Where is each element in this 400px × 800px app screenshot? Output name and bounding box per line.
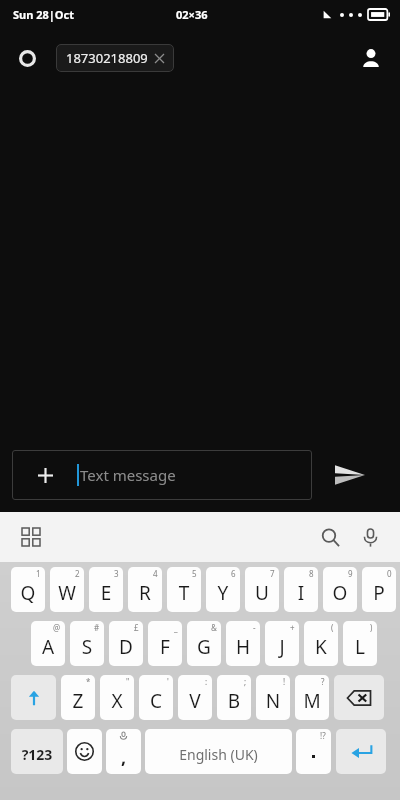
button[interactable]: 8 [284,567,318,612]
button[interactable]: ) [343,621,377,666]
button[interactable]: Search [314,521,346,553]
staticText: # [94,622,100,633]
button[interactable]: 1 [11,567,45,612]
staticText: V [178,688,212,714]
staticText: D [109,634,143,660]
staticText: I [284,580,318,606]
button[interactable]: Contacts [356,43,386,73]
staticText: Sun 28|Oct [13,7,75,22]
staticText: F [148,634,182,660]
button[interactable]: * [61,675,95,720]
button[interactable]: 4 [128,567,162,612]
button[interactable]: 18730218809 [56,44,174,72]
button[interactable]: Backspace [334,675,384,720]
staticText: ' [167,676,169,687]
staticText: W [50,580,84,606]
button[interactable]: @ [31,621,65,666]
staticText: 0 [387,568,392,579]
staticText: 18730218809 [66,49,148,67]
staticText: & [211,622,217,633]
staticText: 9 [348,568,353,579]
button[interactable]: 5 [167,567,201,612]
button[interactable]: 9 [323,567,357,612]
staticText: A [31,634,65,660]
staticText: E [89,580,123,606]
staticText: H [226,634,260,660]
staticText: N [256,688,290,714]
staticText: ) [370,622,373,633]
staticText: : [205,676,208,687]
staticText: S [70,634,104,660]
staticText: Text message [80,465,176,485]
staticText: Y [206,580,240,606]
button[interactable]: _ [148,621,182,666]
button[interactable]: ?123 [11,729,63,774]
button[interactable]: : [178,675,212,720]
staticText: * [86,676,91,687]
staticText: Z [61,688,95,714]
staticText: 2 [75,568,80,579]
staticText: ! [283,676,286,687]
staticText: B [217,688,251,714]
staticText: 4 [153,568,158,579]
staticText: + [290,622,295,633]
staticText: O [323,580,357,606]
button[interactable]: ' [139,675,173,720]
button[interactable]: English (UK) [145,729,292,774]
button[interactable]: Voice input [354,521,386,553]
button[interactable]: & [187,621,221,666]
staticText: 1 [36,568,41,579]
button[interactable]: 0 [362,567,396,612]
button[interactable]: - [226,621,260,666]
button[interactable]: ! [256,675,290,720]
staticText: Q [11,580,45,606]
staticText: !? [320,730,326,741]
other: Add attachment [34,464,56,486]
staticText: @ [53,622,61,633]
button[interactable]: period [296,729,331,774]
staticText: P [362,580,396,606]
staticText: " [126,676,130,687]
button[interactable]: £ [109,621,143,666]
staticText: K [304,634,338,660]
staticText: C [139,688,173,714]
button[interactable]: 2 [50,567,84,612]
staticText: , [121,745,127,770]
staticText: - [253,622,256,633]
staticText: M [295,688,329,714]
button[interactable]: ( [304,621,338,666]
button[interactable]: comma [106,729,141,774]
staticText: _ [174,622,178,633]
staticText: G [187,634,221,660]
staticText: ( [331,622,334,633]
staticText: R [128,580,162,606]
staticText: ; [244,676,247,687]
button[interactable]: 3 [89,567,123,612]
button[interactable]: Keyboard menu [16,522,46,552]
staticText: English (UK) [145,745,292,764]
staticText: ?123 [11,745,63,764]
staticText: X [100,688,134,714]
button[interactable]: Send [312,438,388,512]
staticText: 02×36 [176,7,208,22]
button[interactable]: ; [217,675,251,720]
staticText: J [265,634,299,660]
staticText: 8 [309,568,314,579]
button[interactable]: Add attachment [12,450,312,500]
staticText: L [343,634,377,660]
button[interactable]: " [100,675,134,720]
button[interactable]: # [70,621,104,666]
button[interactable]: Enter [336,729,386,774]
staticText: 3 [114,568,119,579]
staticText: 7 [270,568,275,579]
button[interactable]: 7 [245,567,279,612]
staticText: U [245,580,279,606]
button[interactable]: Recipient status [14,45,40,71]
staticText: T [167,580,201,606]
button[interactable]: + [265,621,299,666]
staticText: £ [134,622,139,633]
button[interactable]: ? [295,675,329,720]
button[interactable]: Emoji [67,729,102,774]
button[interactable]: Shift [11,675,56,720]
button[interactable]: 6 [206,567,240,612]
